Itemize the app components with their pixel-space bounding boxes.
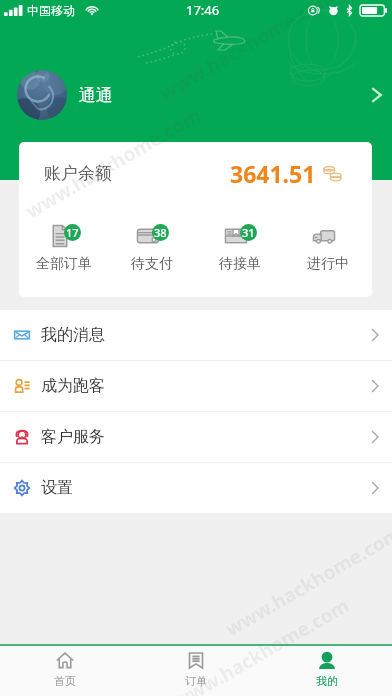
staticText: 我的 [316,674,338,688]
button[interactable]: 首页 [0,646,130,696]
staticText: 进行中 [307,255,349,273]
button[interactable]: 设置 [0,463,392,513]
staticText: 17 [66,225,79,240]
staticText: 订单 [185,674,207,688]
staticText: 全部订单 [36,255,92,273]
button[interactable]: 客户服务 [0,412,392,462]
button[interactable]: 31 [196,205,284,297]
staticText: 设置 [41,478,73,498]
staticText: www.hackhome.com [169,592,354,696]
staticText: 我的消息 [41,325,105,345]
staticText: 成为跑客 [41,376,105,396]
button[interactable]: 我的 [261,646,392,696]
staticText: 账户余额 [44,163,112,184]
button[interactable]: 38 [108,205,196,297]
button[interactable]: 17 [19,205,108,297]
staticText: 中国移动 [27,3,75,18]
staticText: 38 [154,225,167,240]
button[interactable]: 我的消息 [0,310,392,360]
staticText: www.hackhome.com [155,0,340,106]
button[interactable]: 成为跑客 [0,361,392,411]
staticText: 首页 [54,674,76,688]
button[interactable]: 进行中 [284,205,372,297]
staticText: www.hackhome.com [21,102,206,224]
staticText: 3641.51 [230,158,316,189]
staticText: 17:46 [186,1,220,19]
button[interactable]: 订单 [130,646,261,696]
staticText: www.hackhome.com [221,520,392,642]
staticText: 31 [242,225,255,240]
staticText: 客户服务 [41,427,105,447]
staticText: 待接单 [219,255,261,273]
staticText: 待支付 [131,255,173,273]
button[interactable]: 通通 [0,66,392,124]
staticText: 通通 [79,85,113,106]
